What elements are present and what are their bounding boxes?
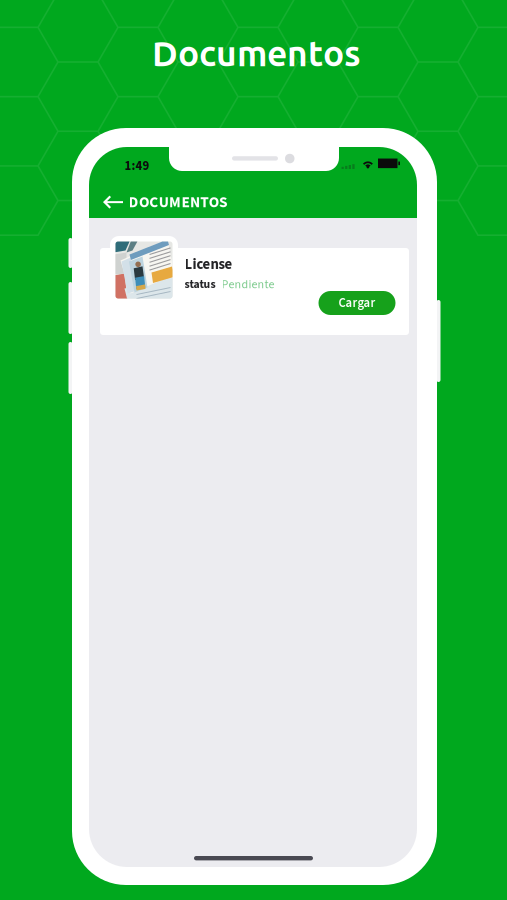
button[interactable]: DOCUMENTOS bbox=[89, 182, 251, 222]
button[interactable]: Cargar bbox=[318, 291, 395, 315]
staticText: DOCUMENTOS bbox=[128, 192, 228, 213]
staticText: Cargar bbox=[338, 294, 375, 312]
staticText: Documentos bbox=[152, 33, 361, 73]
staticText: status bbox=[184, 276, 215, 293]
staticText: Pendiente bbox=[221, 276, 274, 293]
staticText: 1:49 bbox=[124, 157, 149, 175]
staticText: License bbox=[184, 254, 232, 275]
